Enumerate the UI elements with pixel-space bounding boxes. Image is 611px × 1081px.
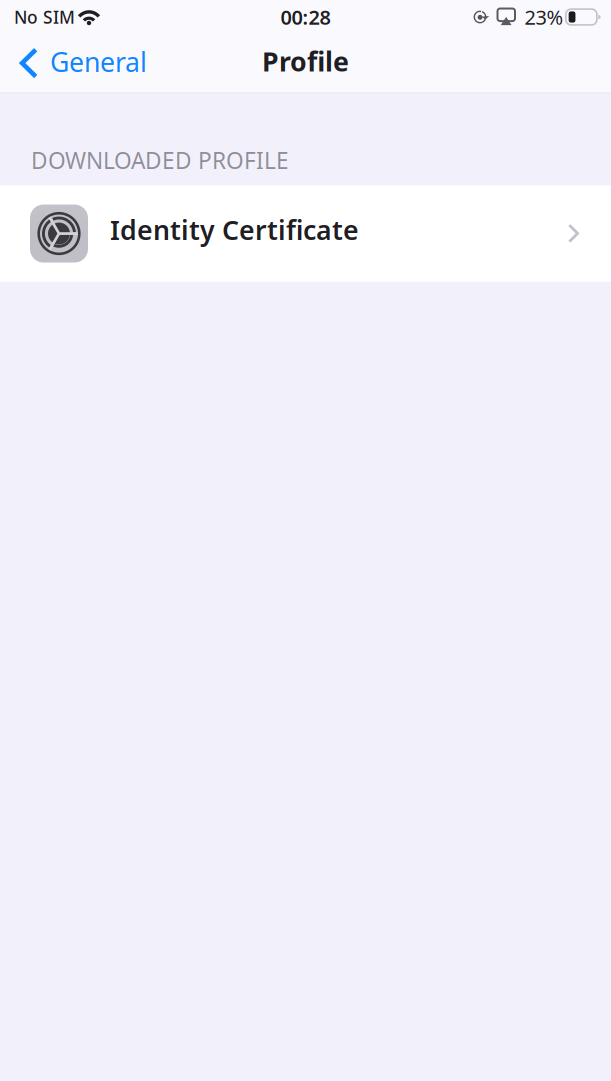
staticText: Identity Certificate: [110, 212, 359, 247]
button[interactable]: General: [0, 34, 159, 93]
staticText: 23%: [524, 4, 563, 30]
staticText: Profile: [262, 43, 349, 79]
button[interactable]: Identity Certificate: [0, 185, 611, 282]
staticText: General: [50, 44, 147, 79]
staticText: No SIM: [14, 5, 75, 28]
staticText: DOWNLOADED PROFILE: [31, 145, 289, 175]
staticText: 00:28: [280, 4, 330, 30]
